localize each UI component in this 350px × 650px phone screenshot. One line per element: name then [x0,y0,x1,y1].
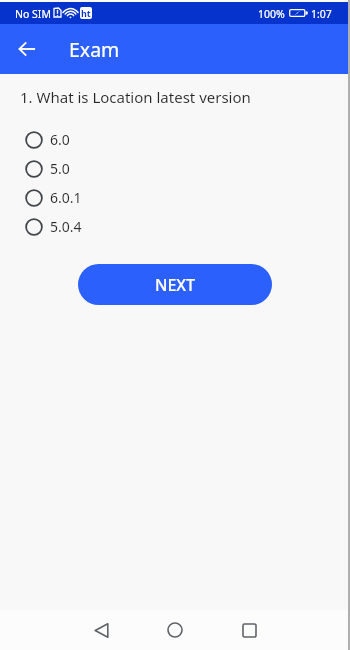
button[interactable]: 6.0 [0,125,350,154]
button[interactable]: 5.0.4 [0,212,350,241]
staticText: 6.0.1 [50,188,82,207]
staticText: No SIM [15,7,51,21]
button[interactable]: Back [11,33,43,65]
staticText: 6.0 [50,130,70,149]
staticText: 1. What is Location latest version [20,87,251,107]
staticText: 100% [258,7,285,21]
button[interactable]: 5.0 [0,154,350,183]
button[interactable]: 6.0.1 [0,183,350,212]
staticText: 5.0.4 [50,217,82,236]
button[interactable]: Home [151,610,199,650]
staticText: NEXT [155,274,196,296]
staticText: 1:07 [311,7,332,21]
button[interactable]: Back [77,610,125,650]
button[interactable]: Recents [225,610,273,650]
staticText: Exam [69,36,120,63]
button[interactable]: NEXT [78,264,272,305]
staticText: 5.0 [50,159,70,178]
staticText: ht [81,7,91,19]
